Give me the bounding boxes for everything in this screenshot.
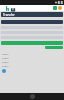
button[interactable]: Transfer bbox=[1, 12, 63, 17]
staticText: Label bbox=[2, 52, 9, 55]
staticText: Transfer bbox=[3, 13, 15, 17]
staticText: Label bbox=[2, 64, 9, 67]
button[interactable]: Home bbox=[30, 94, 35, 99]
button[interactable]: Profile bbox=[58, 6, 62, 10]
button[interactable] bbox=[45, 46, 63, 49]
staticText: Label bbox=[2, 56, 9, 59]
staticText: Label bbox=[2, 60, 9, 63]
button[interactable] bbox=[1, 41, 63, 45]
button[interactable] bbox=[1, 20, 63, 24]
button[interactable]: Balance bbox=[53, 6, 57, 10]
